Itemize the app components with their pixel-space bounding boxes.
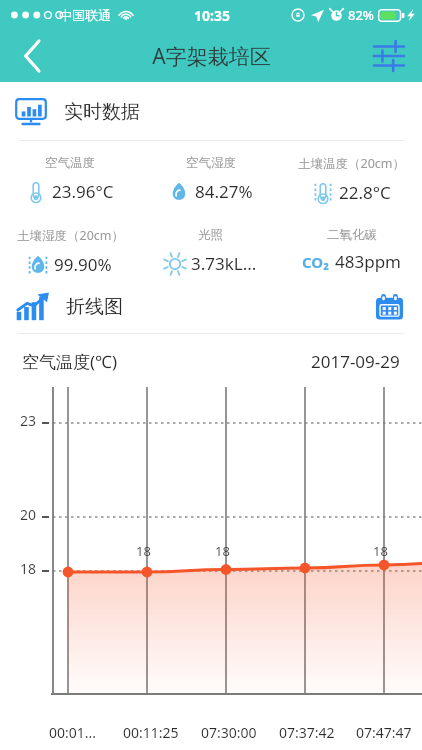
button[interactable]: 空气湿度: [140, 155, 281, 204]
staticText: 23: [20, 411, 37, 430]
button[interactable]: 空气温度: [0, 155, 140, 204]
staticText: 82%: [348, 6, 374, 24]
staticText: 07:30:00: [201, 723, 257, 742]
staticText: 00:11:25: [123, 723, 179, 742]
button[interactable]: 二氧化碳: [281, 227, 422, 273]
staticText: 20: [20, 505, 37, 524]
staticText: 18: [215, 542, 230, 560]
button[interactable]: 土壤湿度（20cm）: [0, 227, 140, 277]
button[interactable]: 土壤温度（20cm）: [281, 155, 422, 205]
staticText: 18: [20, 559, 37, 578]
staticText: 483ppm: [335, 250, 401, 273]
staticText: 3.73kL...: [191, 252, 257, 275]
staticText: 07:47:47: [356, 723, 412, 742]
button[interactable]: Select date: [368, 286, 410, 328]
staticText: 光照: [198, 227, 223, 243]
staticText: 18: [136, 542, 151, 560]
staticText: A字架栽培区: [152, 42, 271, 71]
staticText: 07:37:42: [279, 723, 335, 742]
staticText: 84.27%: [195, 180, 253, 203]
staticText: 二氧化碳: [327, 227, 377, 243]
staticText: 土壤湿度（20cm）: [17, 227, 124, 244]
staticText: 22.8°C: [339, 181, 391, 204]
staticText: CO₂: [302, 252, 329, 272]
staticText: 空气温度: [45, 155, 95, 171]
staticText: 00:01...: [49, 723, 97, 742]
staticText: 23.96°C: [52, 180, 114, 203]
button[interactable]: Back: [6, 30, 58, 82]
staticText: 18: [373, 542, 388, 560]
staticText: 折线图: [66, 295, 123, 319]
staticText: 2017-09-29: [311, 350, 400, 373]
staticText: 空气温度(℃): [22, 350, 118, 373]
staticText: 99.90%: [54, 253, 112, 276]
staticText: 10:35: [194, 6, 230, 25]
staticText: 空气湿度: [186, 155, 236, 171]
staticText: 中国联通: [59, 7, 111, 23]
staticText: 实时数据: [64, 100, 140, 124]
button[interactable]: 光照: [140, 227, 281, 276]
button[interactable]: Settings: [366, 33, 412, 79]
staticText: 土壤温度（20cm）: [298, 155, 405, 172]
